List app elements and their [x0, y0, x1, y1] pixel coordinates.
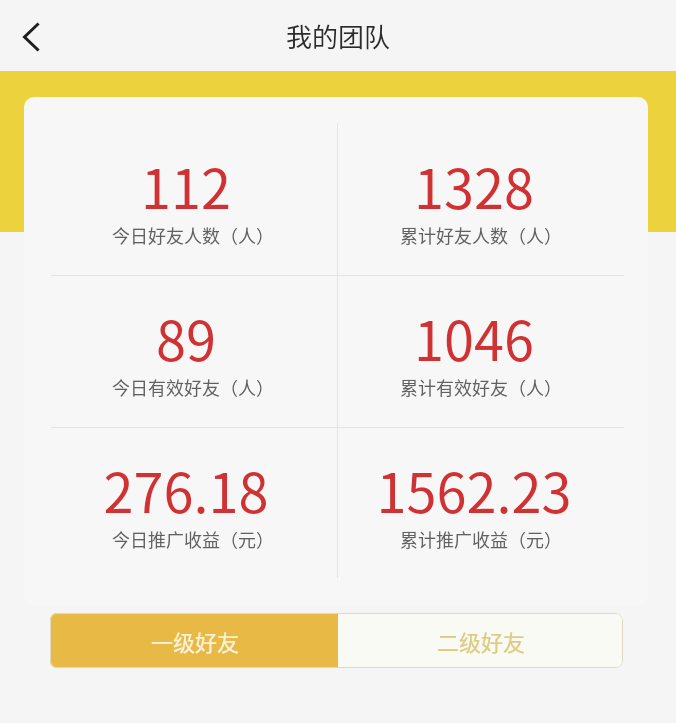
staticText: 今日推广收益（元）	[43, 526, 343, 552]
staticText: 112	[36, 146, 336, 224]
staticText: 累计推广收益（元）	[331, 526, 631, 552]
staticText: 我的团队	[286, 17, 391, 55]
staticText: 一级好友	[151, 625, 240, 657]
staticText: 二级好友	[437, 625, 526, 657]
staticText: 89	[36, 298, 336, 376]
staticText: 1328	[324, 146, 624, 224]
staticText: 276.18	[36, 450, 336, 528]
staticText: 今日有效好友（人）	[43, 374, 343, 400]
button[interactable]: Back	[7, 13, 55, 61]
button[interactable]: 一级好友	[50, 613, 338, 668]
staticText: 累计好友人数（人）	[331, 222, 631, 248]
button[interactable]: 二级好友	[338, 613, 623, 668]
staticText: 今日好友人数（人）	[43, 222, 343, 248]
staticText: 累计有效好友（人）	[331, 374, 631, 400]
staticText: 1562.23	[324, 450, 624, 528]
staticText: 1046	[324, 298, 624, 376]
